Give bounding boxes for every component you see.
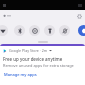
staticText: Remove unused apps for extra storage (3, 63, 74, 68)
button[interactable]: Do not disturb (29, 25, 40, 36)
button[interactable]: Bluetooth (14, 25, 25, 36)
button[interactable]: Flashlight (44, 25, 55, 36)
button[interactable]: Settings (75, 12, 83, 20)
button[interactable]: Manage my apps (3, 71, 38, 78)
staticText: Google Play Store · 2m (9, 48, 48, 53)
button[interactable]: Google Play Store · 2m (0, 44, 85, 85)
button[interactable]: Battery saver (78, 25, 85, 36)
staticText: Manage my apps (4, 72, 37, 77)
staticText: Free up your device anytime (3, 56, 63, 62)
button[interactable]: Auto rotate (59, 25, 70, 36)
button[interactable]: Search (2, 13, 13, 19)
button[interactable]: Wi-Fi (0, 25, 8, 36)
